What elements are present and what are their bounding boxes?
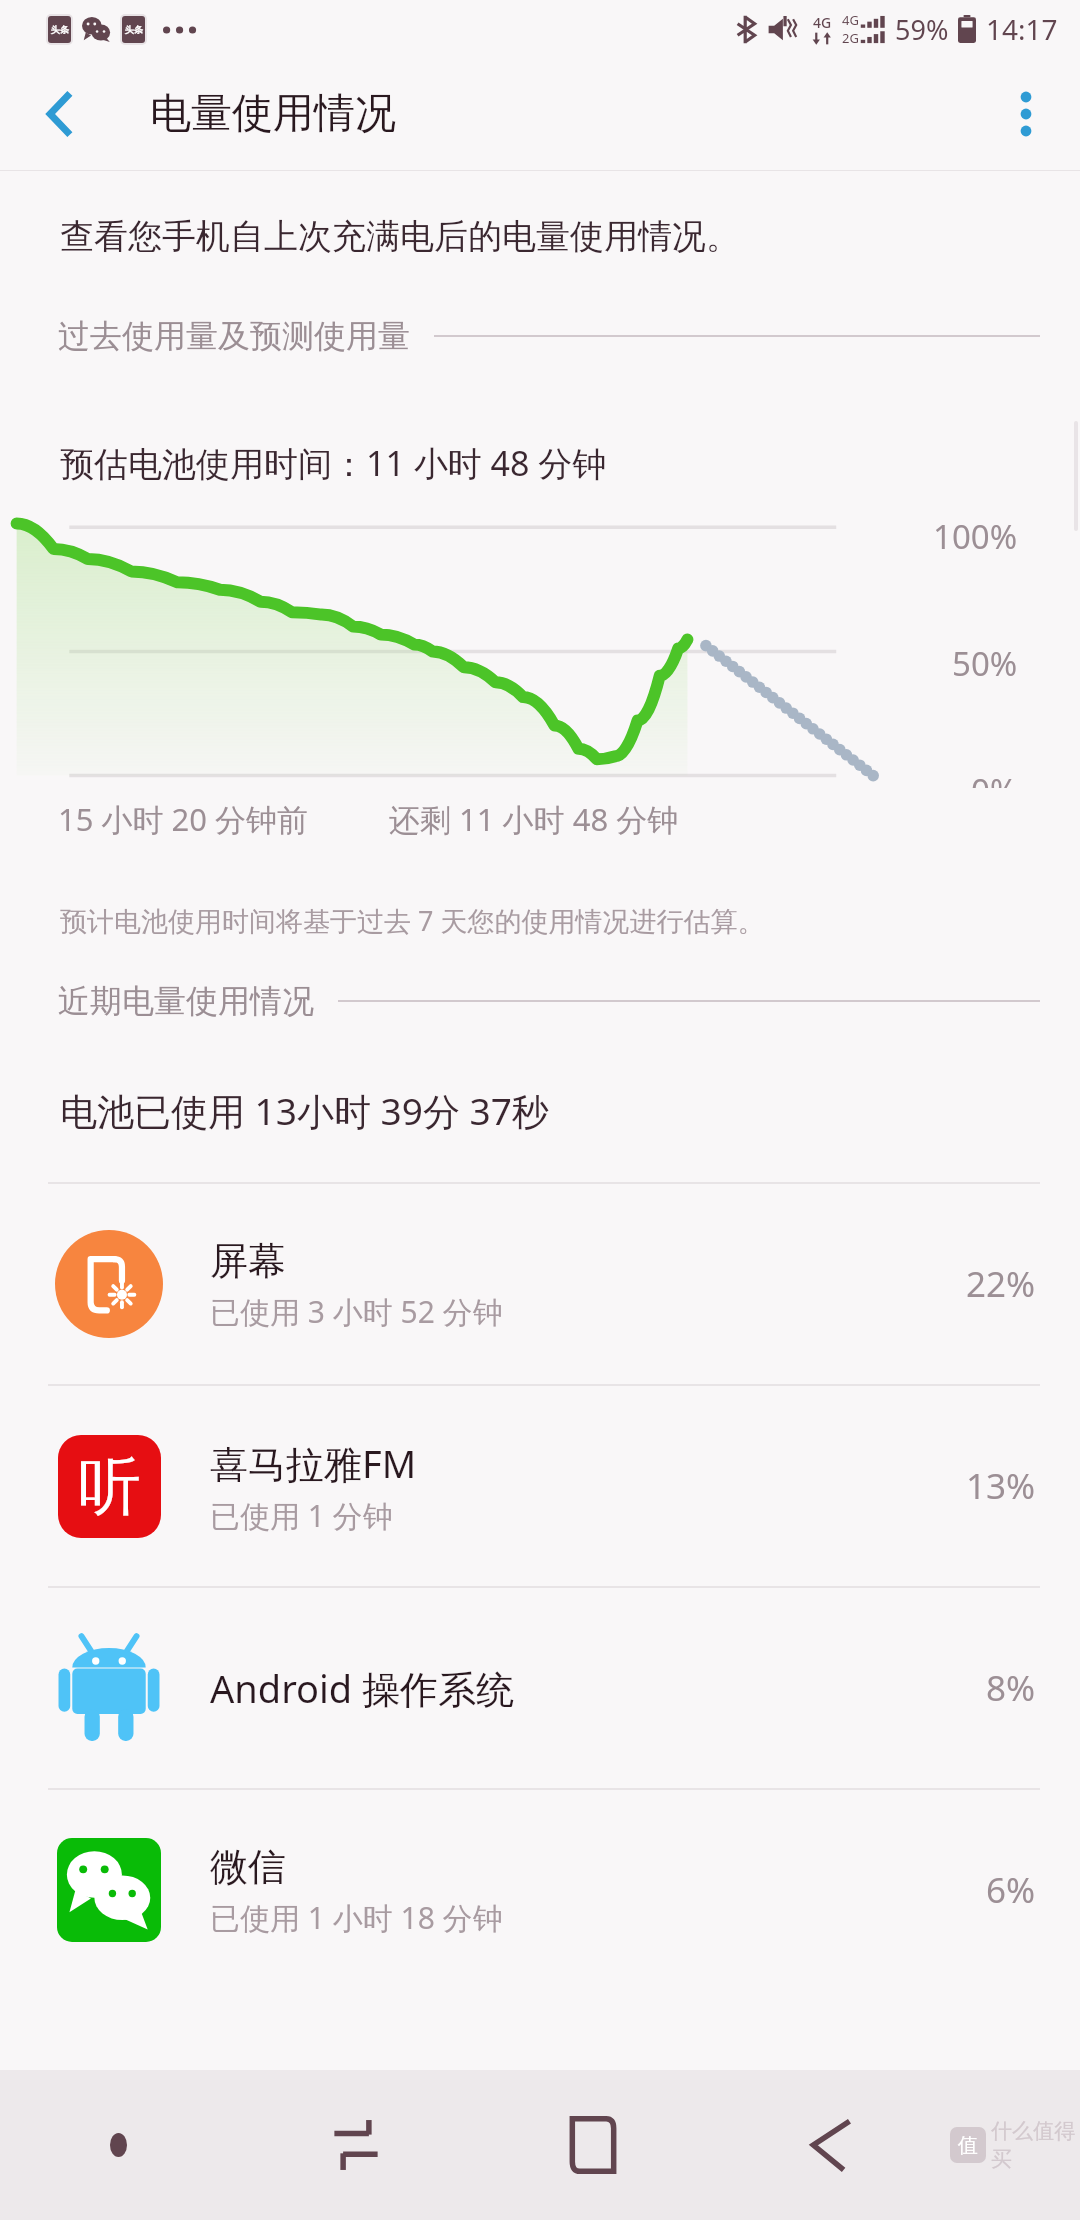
- staticText: 过去使用量及预测使用量: [58, 316, 410, 356]
- staticText: Android 操作系统: [210, 1662, 515, 1714]
- button[interactable]: Android 操作系统: [0, 1588, 1080, 1788]
- staticText: 喜马拉雅FM: [210, 1437, 417, 1489]
- staticText: 8%: [986, 1664, 1036, 1712]
- button[interactable]: 屏幕: [0, 1184, 1080, 1384]
- staticText: 微信: [210, 1843, 286, 1891]
- button[interactable]: Back: [20, 74, 100, 154]
- staticText: 还剩 11 小时 48 分钟: [389, 798, 679, 840]
- staticText: 近期电量使用情况: [58, 981, 314, 1021]
- staticText: 6%: [986, 1866, 1036, 1914]
- button[interactable]: Recent apps: [237, 2070, 474, 2220]
- staticText: 4G: [813, 13, 832, 32]
- staticText: 预估电池使用时间：11 小时 48 分钟: [60, 440, 607, 486]
- staticText: 已使用 1 小时 18 分钟: [210, 1897, 503, 1938]
- button[interactable]: Back: [712, 2070, 950, 2220]
- staticText: 值: [958, 2133, 978, 2158]
- staticText: 14:17: [986, 10, 1058, 48]
- button[interactable]: Home: [474, 2070, 712, 2220]
- button[interactable]: More options: [986, 74, 1066, 154]
- staticText: 什么值得买: [991, 2118, 1080, 2172]
- staticText: 头条: [125, 24, 143, 35]
- staticText: 2G: [842, 29, 859, 47]
- staticText: 0%: [971, 768, 1018, 788]
- button[interactable]: 听: [0, 1386, 1080, 1586]
- staticText: 查看您手机自上次充满电后的电量使用情况。: [60, 215, 740, 258]
- staticText: 电池已使用 13小时 39分 37秒: [60, 1085, 549, 1136]
- staticText: 屏幕: [210, 1237, 286, 1285]
- staticText: 已使用 3 小时 52 分钟: [210, 1291, 503, 1332]
- staticText: 22%: [966, 1260, 1036, 1308]
- staticText: 50%: [952, 641, 1018, 686]
- staticText: 电量使用情况: [150, 88, 396, 140]
- staticText: 13%: [966, 1462, 1036, 1510]
- staticText: 59%: [895, 11, 949, 48]
- staticText: 头条: [51, 24, 69, 35]
- staticText: 已使用 1 分钟: [210, 1495, 393, 1536]
- staticText: 听: [78, 1447, 141, 1526]
- staticText: 4G: [842, 11, 859, 29]
- staticText: 15 小时 20 分钟前: [58, 798, 309, 840]
- button[interactable]: 微信: [0, 1790, 1080, 1990]
- staticText: 预计电池使用时间将基于过去 7 天您的使用情况进行估算。: [60, 902, 765, 939]
- staticText: 100%: [933, 514, 1018, 559]
